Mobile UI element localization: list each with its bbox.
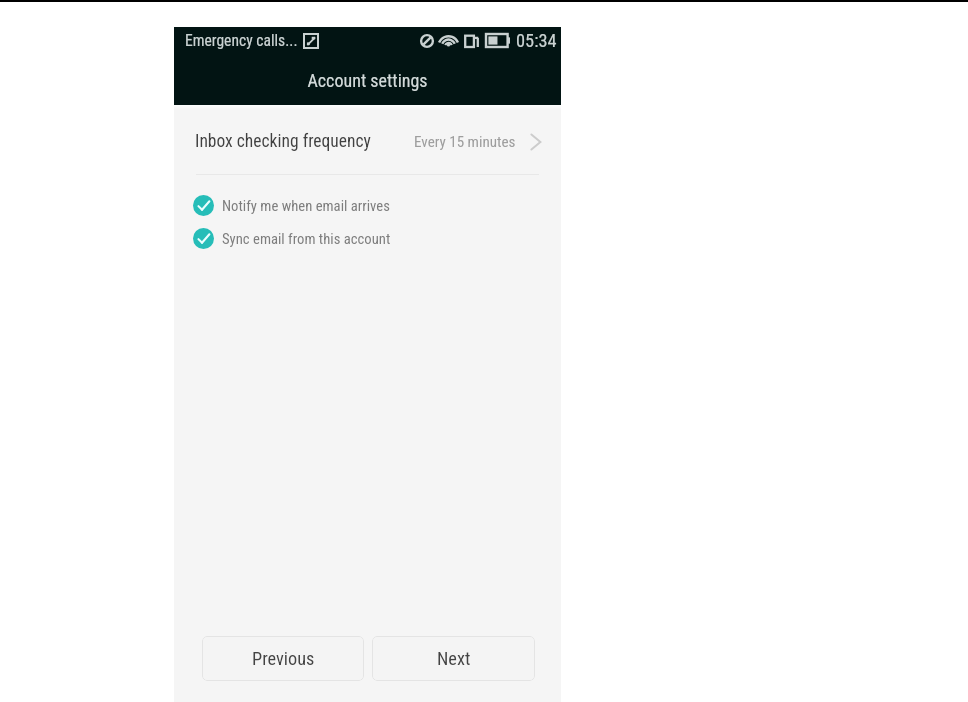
staticText: Sync email from this account [222,230,391,247]
button[interactable]: Previous [202,636,364,681]
staticText: Account settings [307,70,428,91]
staticText: 05:34 [516,30,557,52]
button[interactable]: Next [372,636,535,681]
staticText: Emergency calls... [185,32,298,50]
staticText: Inbox checking frequency [195,131,371,152]
staticText: Previous [252,648,315,669]
staticText: Notify me when email arrives [222,197,390,214]
other: Open inbox checking frequency options [526,133,544,151]
staticText: Every 15 minutes [414,133,516,151]
staticText: Next [437,648,471,669]
button[interactable]: Sync email from this account [174,222,561,255]
button[interactable]: Notify me when email arrives [174,189,561,222]
button[interactable]: Inbox checking frequency [174,109,561,174]
